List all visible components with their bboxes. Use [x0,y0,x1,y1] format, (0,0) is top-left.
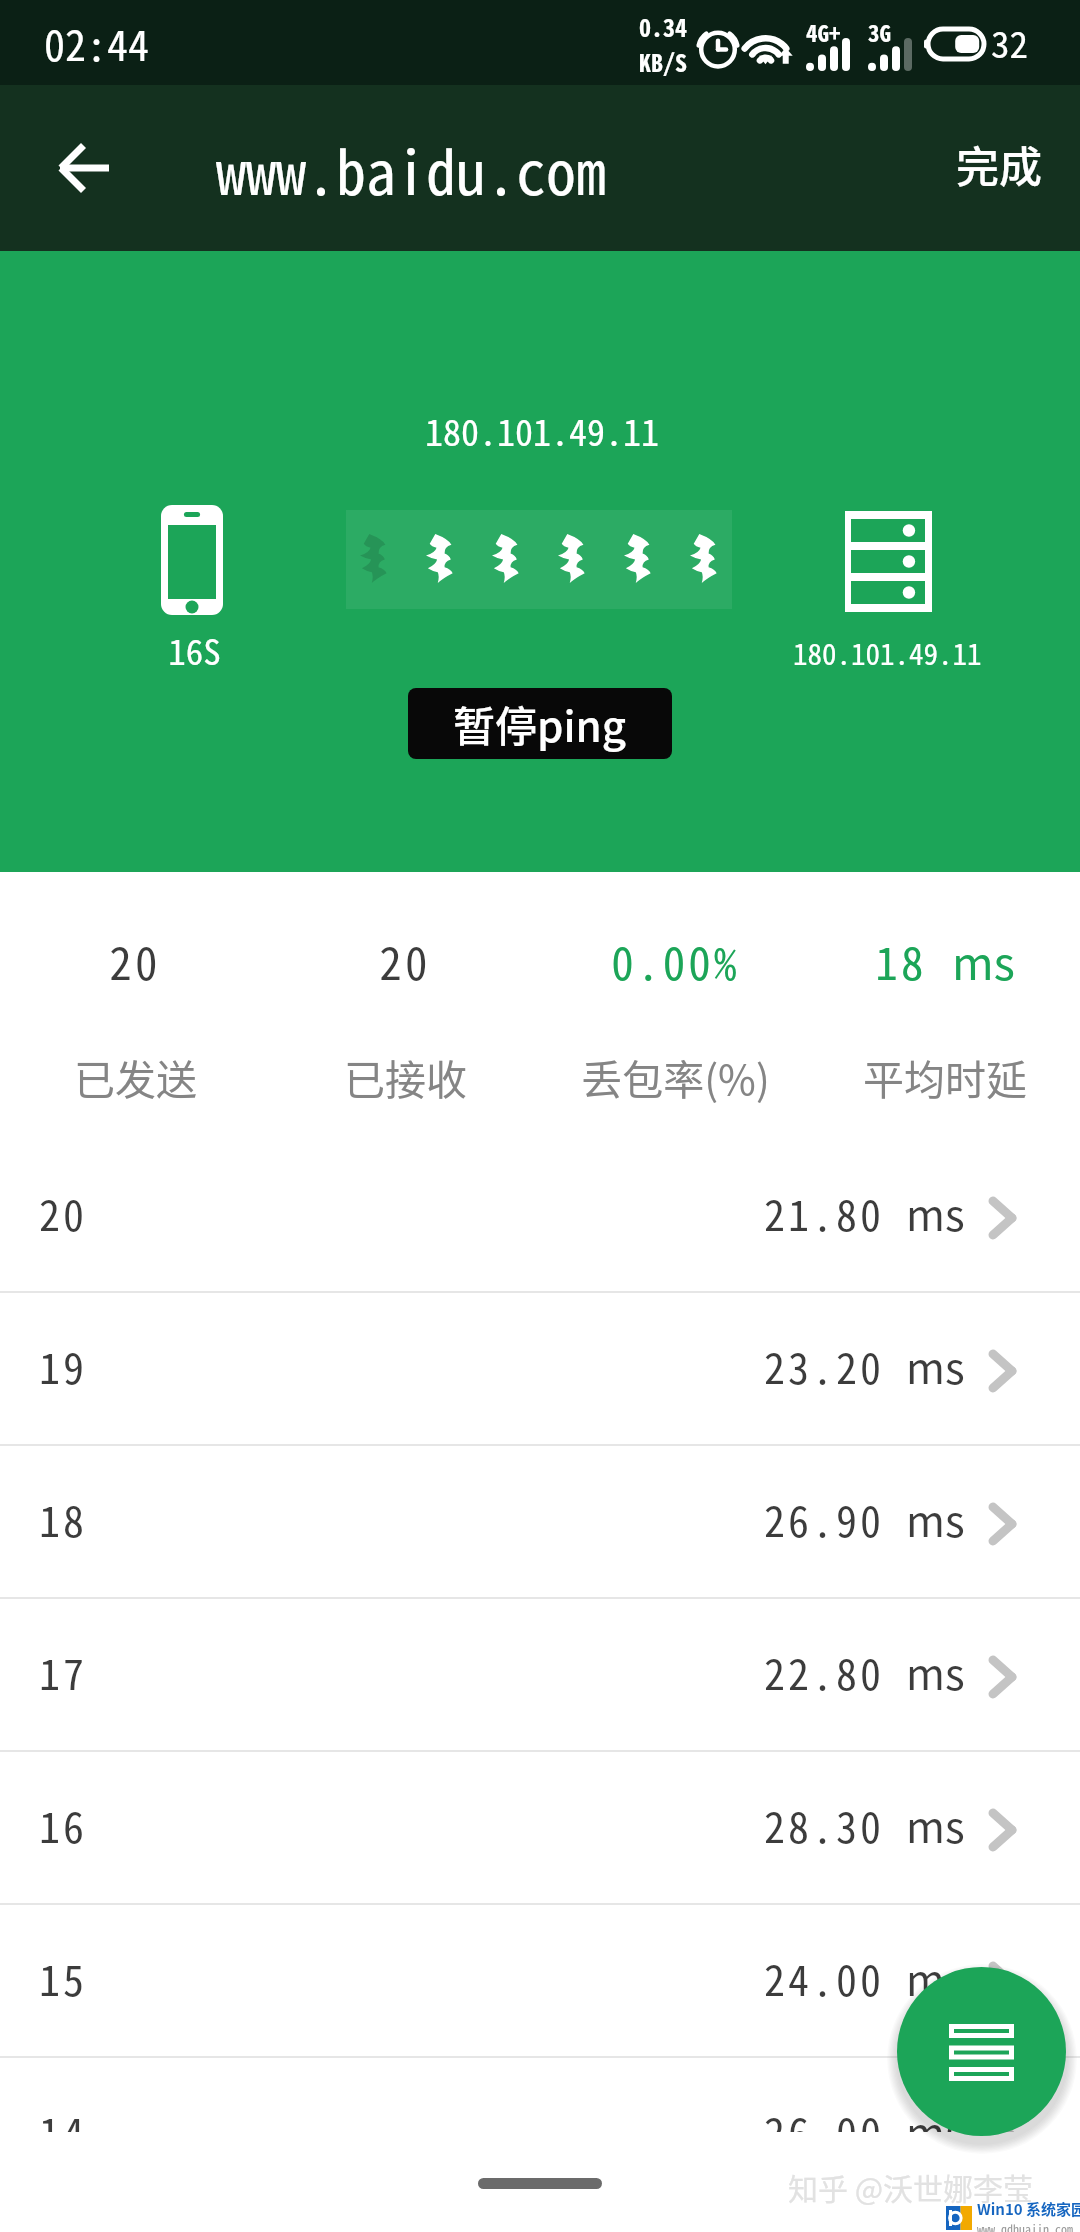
staticText: 20 [379,928,431,993]
staticText: 0.00% [611,928,740,993]
staticText: 26.00 [764,2100,885,2132]
staticText: www.baidu.com [216,125,606,212]
staticText: KB/S [639,44,687,79]
staticText: 20 [39,1182,88,1243]
staticText: 26.90 [764,1488,885,1549]
staticText: 18 [39,1488,88,1549]
staticText: 0.34 [639,9,687,44]
staticText: ms [906,2100,965,2132]
staticText: 02:44 [44,12,150,73]
button[interactable]: 15 [0,1905,1080,2058]
staticText: 21.80 [764,1182,885,1243]
staticText: ms [906,1641,965,1702]
staticText: 已接收 [344,1047,467,1106]
staticText: 180.101.49.11 [793,631,982,673]
staticText: 23.20 [764,1335,885,1396]
button[interactable]: 14 [0,2058,1080,2132]
button[interactable]: 18 [0,1446,1080,1599]
staticText: 知乎 @沃世娜李莹 [788,2165,1034,2208]
staticText: ms [906,1182,965,1243]
staticText: 32 [991,15,1028,69]
staticText: 28.30 [764,1794,885,1855]
button[interactable]: Back [23,108,143,228]
staticText: 17 [39,1641,88,1702]
button[interactable]: 20 [0,1140,1080,1293]
staticText: 4G+ [806,15,841,48]
button[interactable]: 19 [0,1293,1080,1446]
staticText: 19 [39,1335,88,1396]
staticText: 3G [868,15,891,48]
staticText: Win10 系统家园 [977,2198,1080,2220]
staticText: 16S [168,624,221,675]
staticText: www.qdhuajin.com [977,2220,1074,2232]
staticText: 14 [39,2100,88,2132]
staticText: 暂停ping [453,693,627,754]
staticText: ms [906,1947,965,2008]
staticText: 24.00 [764,1947,885,2008]
staticText: 已发送 [74,1047,197,1106]
staticText: 完成 [956,133,1042,195]
staticText: 22.80 [764,1641,885,1702]
button[interactable]: 16 [0,1752,1080,1905]
staticText: 16 [39,1794,88,1855]
staticText: 180.101.49.11 [425,404,659,456]
staticText: 平均时延 [863,1047,1027,1106]
staticText: 20 [109,928,161,993]
staticText: 15 [39,1947,88,2008]
button[interactable]: 完成 [938,115,1060,213]
staticText: ms [906,1488,965,1549]
staticText: ms [906,1794,965,1855]
staticText: ms [906,1335,965,1396]
staticText: ms [952,928,1015,993]
button[interactable]: List options [897,1967,1066,2136]
staticText: 18 [875,928,927,993]
button[interactable]: 17 [0,1599,1080,1752]
button[interactable]: 暂停ping [408,688,672,759]
staticText: 丢包率(%) [581,1047,770,1106]
